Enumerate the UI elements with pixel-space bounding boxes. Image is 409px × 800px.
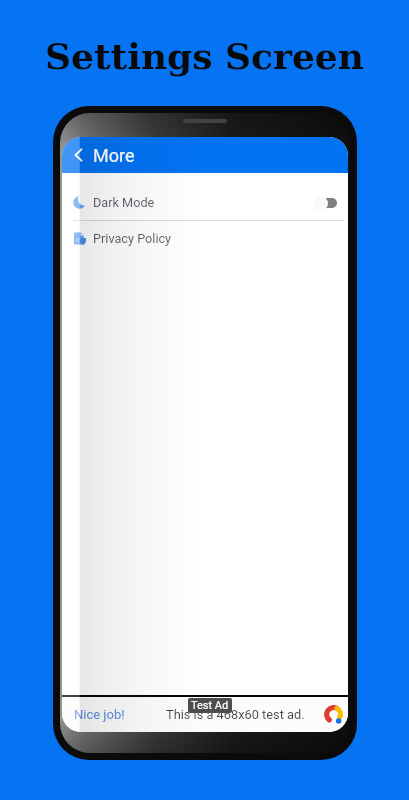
staticText: Nice job! (74, 707, 125, 722)
staticText: Test Ad (191, 699, 229, 712)
staticText: More (93, 145, 135, 166)
button[interactable]: Back (68, 144, 90, 166)
staticText: This is a 468x60 test ad. (166, 707, 305, 722)
button[interactable]: Dark Mode (62, 185, 348, 220)
staticText: Dark Mode (93, 195, 155, 210)
staticText: Settings Screen (0, 35, 409, 77)
button[interactable]: Privacy Policy (62, 221, 348, 256)
staticText: Privacy Policy (93, 231, 172, 246)
button[interactable]: Dark Mode switch (313, 195, 337, 211)
